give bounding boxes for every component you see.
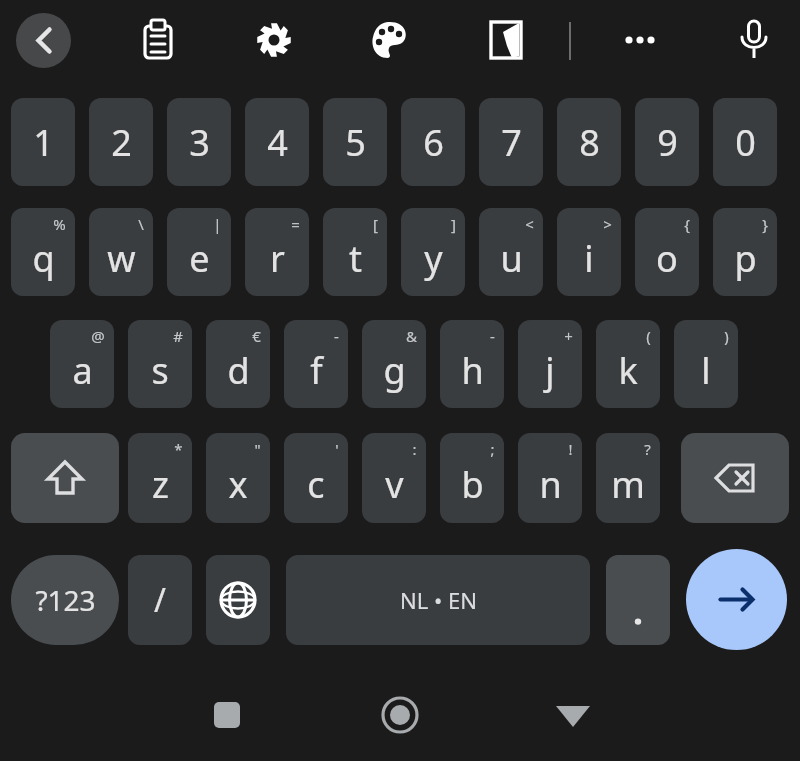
- button[interactable]: Shift: [11, 433, 119, 523]
- staticText: l: [701, 346, 711, 395]
- button[interactable]: i: [557, 208, 621, 296]
- button[interactable]: j: [518, 320, 582, 408]
- button[interactable]: s: [128, 320, 192, 408]
- button[interactable]: z: [128, 433, 192, 523]
- staticText: m: [611, 460, 645, 509]
- button[interactable]: 2: [89, 98, 153, 186]
- button[interactable]: q: [11, 208, 75, 296]
- staticText: q: [32, 234, 55, 283]
- staticText: \: [138, 214, 144, 234]
- staticText: 5: [345, 118, 366, 167]
- button[interactable]: Enter: [686, 549, 787, 650]
- staticText: ?123: [35, 581, 96, 619]
- button[interactable]: More options: [612, 12, 668, 68]
- button[interactable]: r: [245, 208, 309, 296]
- button[interactable]: 8: [557, 98, 621, 186]
- staticText: }: [762, 214, 768, 234]
- button[interactable]: 9: [635, 98, 699, 186]
- button[interactable]: 0: [713, 98, 777, 186]
- staticText: t: [349, 234, 362, 283]
- button[interactable]: Themes: [362, 12, 418, 68]
- button[interactable]: Recent apps: [190, 685, 264, 745]
- button[interactable]: p: [713, 208, 777, 296]
- staticText: |: [213, 214, 222, 234]
- staticText: =: [291, 214, 300, 234]
- button[interactable]: 1: [11, 98, 75, 186]
- staticText: *: [174, 439, 183, 459]
- button[interactable]: t: [323, 208, 387, 296]
- staticText: NL • EN: [400, 585, 477, 615]
- staticText: ): [724, 326, 729, 346]
- button[interactable]: 3: [167, 98, 231, 186]
- staticText: c: [307, 460, 325, 509]
- button[interactable]: y: [401, 208, 465, 296]
- staticText: 2: [111, 118, 132, 167]
- staticText: 7: [501, 118, 522, 167]
- staticText: s: [151, 346, 169, 395]
- staticText: b: [461, 460, 484, 509]
- button[interactable]: Clipboard: [130, 12, 186, 68]
- staticText: j: [545, 346, 555, 395]
- staticText: [: [373, 214, 378, 234]
- button[interactable]: e: [167, 208, 231, 296]
- button[interactable]: l: [674, 320, 738, 408]
- button[interactable]: 5: [323, 98, 387, 186]
- staticText: w: [107, 234, 136, 283]
- staticText: +: [564, 326, 573, 346]
- button[interactable]: Hide keyboard: [536, 685, 610, 745]
- staticText: a: [72, 346, 93, 395]
- staticText: ;: [490, 439, 495, 459]
- button[interactable]: h: [440, 320, 504, 408]
- staticText: /: [154, 578, 166, 622]
- button[interactable]: 7: [479, 98, 543, 186]
- staticText: p: [734, 234, 757, 283]
- button[interactable]: n: [518, 433, 582, 523]
- button[interactable]: d: [206, 320, 270, 408]
- button[interactable]: c: [284, 433, 348, 523]
- staticText: g: [383, 346, 406, 395]
- button[interactable]: k: [596, 320, 660, 408]
- button[interactable]: v: [362, 433, 426, 523]
- staticText: u: [500, 234, 523, 283]
- staticText: &: [406, 326, 417, 346]
- button[interactable]: b: [440, 433, 504, 523]
- button[interactable]: u: [479, 208, 543, 296]
- button[interactable]: Back: [16, 13, 71, 68]
- button[interactable]: Settings: [246, 12, 302, 68]
- button[interactable]: Backspace: [681, 433, 789, 523]
- staticText: %: [53, 214, 66, 234]
- staticText: h: [461, 346, 484, 395]
- staticText: e: [189, 234, 210, 283]
- staticText: ]: [451, 214, 456, 234]
- button[interactable]: m: [596, 433, 660, 523]
- button[interactable]: Handwriting: [478, 12, 534, 68]
- staticText: !: [568, 439, 573, 459]
- staticText: 1: [33, 118, 54, 167]
- button[interactable]: Home: [363, 685, 437, 745]
- button[interactable]: x: [206, 433, 270, 523]
- button[interactable]: 6: [401, 98, 465, 186]
- staticText: ?: [644, 439, 651, 459]
- button[interactable]: w: [89, 208, 153, 296]
- button[interactable]: Voice input: [726, 12, 782, 68]
- button[interactable]: 4: [245, 98, 309, 186]
- staticText: #: [173, 326, 183, 346]
- staticText: :: [412, 439, 417, 459]
- button[interactable]: /: [128, 555, 192, 645]
- button[interactable]: o: [635, 208, 699, 296]
- button[interactable]: NL • EN: [286, 555, 590, 645]
- staticText: 0: [735, 118, 756, 167]
- staticText: 3: [189, 118, 210, 167]
- button[interactable]: a: [50, 320, 114, 408]
- staticText: r: [270, 234, 285, 283]
- staticText: n: [539, 460, 562, 509]
- button[interactable]: Period: [606, 555, 670, 645]
- staticText: v: [385, 460, 404, 509]
- button[interactable]: f: [284, 320, 348, 408]
- staticText: ": [254, 439, 261, 459]
- button[interactable]: g: [362, 320, 426, 408]
- staticText: €: [252, 326, 261, 346]
- button[interactable]: Switch language: [206, 555, 270, 645]
- button[interactable]: ?123: [11, 555, 119, 645]
- staticText: f: [310, 346, 323, 395]
